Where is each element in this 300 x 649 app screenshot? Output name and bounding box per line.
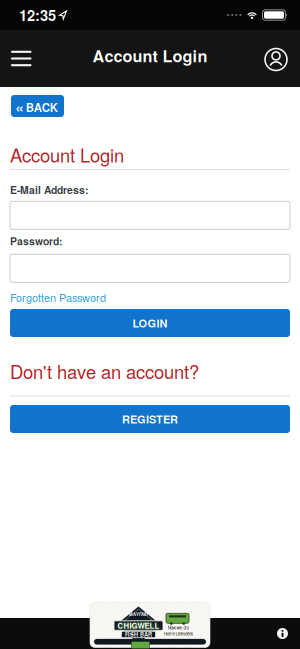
staticText: CHIGWELL [117,620,159,631]
staticText: BACK [26,99,58,115]
button[interactable]: LOGIN [10,309,290,337]
button[interactable] [10,201,290,229]
staticText: MAYFAIR [129,611,148,617]
button[interactable]: REGISTER [10,405,290,433]
staticText: Now we do [167,624,189,631]
staticText: 12:35 [19,4,56,25]
button[interactable]: MAYFAIR [90,602,210,647]
staticText: E-Mail Address: [10,182,88,197]
staticText: REGISTER [122,411,178,427]
staticText: Account Login [10,141,124,168]
staticText: FISH BAR [125,630,152,638]
button[interactable] [257,30,300,87]
button[interactable] [275,626,289,640]
button[interactable]: « [11,95,64,117]
staticText: Home Deliveries [164,631,193,637]
staticText: Don't have an account? [10,358,199,384]
button[interactable] [0,30,39,87]
staticText: « [15,96,24,118]
button[interactable] [10,254,290,282]
button[interactable]: Forgotten Password [10,289,106,305]
staticText: Password: [10,234,62,248]
staticText: Account Login [92,44,207,67]
staticText: LOGIN [132,315,167,331]
staticText: Forgotten Password [10,289,106,305]
